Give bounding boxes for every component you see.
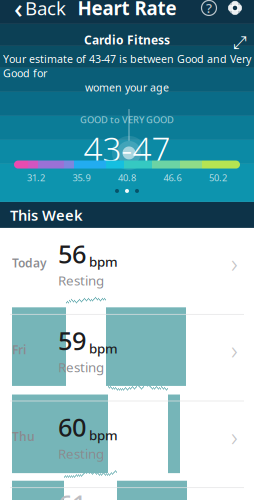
staticText: 40.8: [118, 172, 136, 184]
staticText: ⤢: [233, 34, 247, 51]
staticText: ?: [206, 0, 212, 17]
staticText: bpm: [89, 426, 118, 444]
staticText: Back: [25, 0, 66, 20]
staticText: ‹: [14, 0, 23, 26]
staticText: 60: [58, 410, 86, 444]
staticText: Resting: [58, 445, 104, 462]
staticText: women your age: [85, 80, 169, 94]
staticText: Your estimate of 43-47 is between Good a…: [3, 52, 251, 80]
staticText: 50.2: [209, 172, 227, 184]
staticText: Fri: [12, 342, 26, 358]
button[interactable]: Today: [0, 228, 254, 314]
staticText: Resting: [58, 358, 104, 376]
button[interactable]: Fri: [0, 315, 254, 401]
staticText: 35.9: [72, 172, 90, 184]
staticText: Resting: [58, 271, 104, 289]
staticText: 46.6: [163, 172, 181, 184]
staticText: GOOD to VERY GOOD: [80, 113, 174, 126]
button[interactable]: Settings: [222, 0, 248, 23]
staticText: bpm: [89, 253, 118, 270]
button[interactable]: Help: [196, 0, 222, 23]
button[interactable]: Wed: [0, 488, 254, 500]
button[interactable]: Expand chart: [230, 33, 250, 53]
staticText: Cardio Fitness: [84, 32, 170, 48]
staticText: Today: [12, 255, 47, 271]
staticText: ›: [231, 333, 238, 366]
staticText: Heart Rate: [77, 0, 176, 20]
staticText: Thu: [12, 428, 35, 444]
staticText: bpm: [89, 339, 118, 357]
button[interactable]: ‹: [6, 0, 74, 24]
staticText: 61: [58, 487, 86, 500]
staticText: This Week: [10, 205, 83, 225]
staticText: 56: [58, 237, 86, 270]
staticText: 59: [58, 323, 86, 357]
staticText: 31.2: [27, 172, 45, 184]
button[interactable]: Thu: [0, 401, 254, 487]
staticText: ›: [231, 246, 238, 280]
staticText: ›: [231, 419, 238, 453]
staticText: 43-47: [83, 127, 170, 171]
